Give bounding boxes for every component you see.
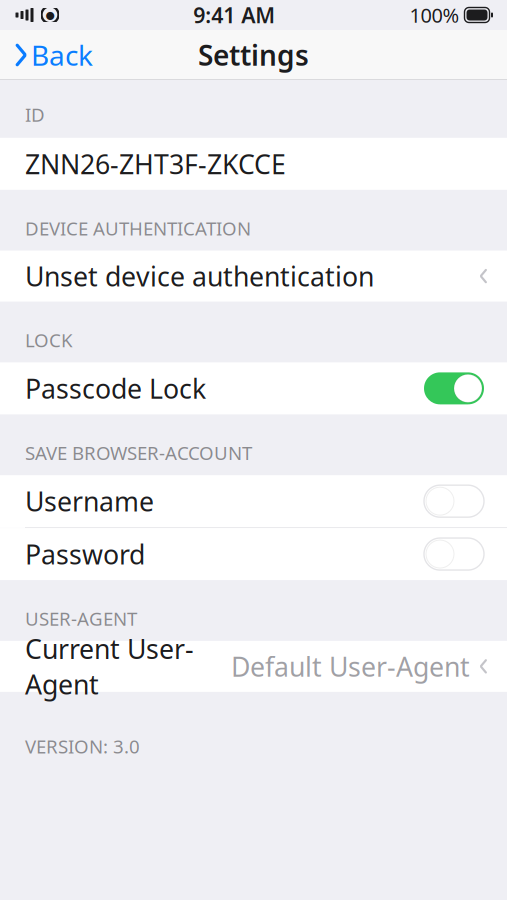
staticText: Password bbox=[25, 536, 145, 572]
staticText: Passcode Lock bbox=[25, 371, 206, 406]
staticText: 9:41 AM bbox=[193, 1, 275, 29]
staticText: VERSION: 3.0 bbox=[25, 734, 140, 759]
staticText: 100% bbox=[409, 2, 459, 28]
staticText: Settings bbox=[198, 36, 309, 74]
staticText: USER-AGENT bbox=[25, 606, 137, 631]
staticText: ZNN26-ZHT3F-ZKCCE bbox=[25, 146, 286, 181]
staticText: ID bbox=[25, 102, 45, 127]
staticText: SAVE BROWSER-ACCOUNT bbox=[25, 440, 252, 465]
staticText: Back bbox=[31, 36, 93, 74]
staticText: Current User-Agent bbox=[25, 631, 194, 702]
staticText: LOCK bbox=[25, 328, 73, 352]
button[interactable]: Username bbox=[0, 475, 507, 527]
staticText: ● bbox=[45, 9, 54, 21]
button[interactable]: ZNN26-ZHT3F-ZKCCE bbox=[0, 138, 507, 190]
staticText: Default User-Agent bbox=[231, 649, 470, 684]
button[interactable]: Passcode Lock bbox=[0, 362, 507, 414]
button[interactable]: Current User-Agent bbox=[0, 641, 507, 692]
button[interactable]: Password bbox=[0, 528, 507, 580]
staticText: Username bbox=[25, 483, 154, 519]
staticText: Unset device authentication bbox=[25, 258, 374, 294]
staticText: DEVICE AUTHENTICATION bbox=[25, 216, 251, 241]
button[interactable]: Back bbox=[0, 30, 103, 80]
button[interactable]: Unset device authentication bbox=[0, 251, 507, 302]
